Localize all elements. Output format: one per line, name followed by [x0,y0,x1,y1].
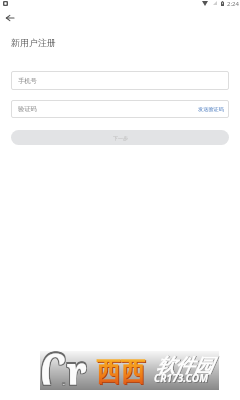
button[interactable]: 发送验证码 [198,106,224,113]
staticText: 2:24 [227,0,239,8]
staticText: Cr [41,335,88,386]
button[interactable]: 验证码 [11,100,229,118]
staticText: 发送验证码 [198,106,224,113]
staticText: 西西 [97,356,146,390]
staticText: Cr [39,333,86,383]
staticText: Cr [40,333,87,383]
staticText: Cr [41,334,88,385]
staticText: Cr [40,334,87,385]
staticText: Cr [40,335,87,386]
staticText: CR173.COM [154,371,209,385]
staticText: CR173.COM [155,372,210,386]
button[interactable]: Back [0,8,19,27]
staticText: 西西 [96,355,145,389]
staticText: Cr [41,333,88,383]
staticText: 验证码 [18,105,37,113]
staticText: 软件园 [156,354,213,378]
staticText: 新用户注册 [11,37,56,48]
button[interactable]: 下一步 [11,130,229,145]
staticText: Cr [39,334,86,385]
staticText: Cr [39,335,86,386]
staticText: 手机号 [18,77,37,85]
staticText: 下一步 [113,135,128,141]
button[interactable]: 手机号 [11,71,229,90]
staticText: 软件园 [157,354,214,378]
